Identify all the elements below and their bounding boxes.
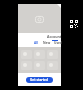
button[interactable]	[47, 61, 58, 70]
button[interactable]: All	[34, 41, 39, 45]
button[interactable]	[34, 61, 45, 70]
button[interactable]: Used	[54, 41, 62, 45]
staticText: Account	[47, 34, 62, 39]
button[interactable]	[47, 50, 58, 59]
button[interactable]	[34, 50, 45, 59]
button[interactable]	[21, 50, 32, 59]
button[interactable]: Scan QR code	[70, 20, 78, 28]
staticText: Get started	[30, 78, 49, 82]
button[interactable]: Get started	[26, 77, 53, 83]
button[interactable]: New	[43, 41, 51, 45]
button[interactable]	[21, 61, 32, 70]
